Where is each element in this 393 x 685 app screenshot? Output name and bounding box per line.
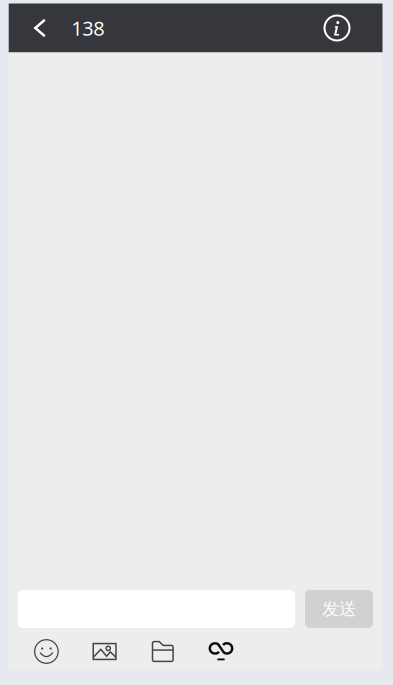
staticText: 发送 [322, 598, 356, 620]
button[interactable]: Photo [75, 637, 134, 666]
button[interactable]: Info [291, 3, 382, 52]
button[interactable]: Back [9, 3, 71, 52]
button[interactable]: Emoji [17, 637, 75, 666]
staticText: 138 [71, 15, 104, 41]
button[interactable]: Files [134, 637, 192, 666]
button[interactable]: 发送 [305, 590, 373, 628]
button[interactable]: More [192, 637, 250, 666]
